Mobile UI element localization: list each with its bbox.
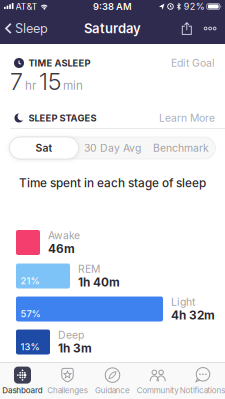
staticText: Community [137, 386, 178, 395]
button[interactable]: More [199, 13, 225, 44]
button[interactable]: Sat [9, 137, 78, 159]
staticText: 13% [20, 341, 39, 352]
button[interactable]: Challenges [45, 364, 90, 398]
staticText: Edit Goal [171, 57, 215, 69]
staticText: SLEEP STAGES [28, 112, 96, 124]
staticText: Light [171, 296, 195, 308]
staticText: Dashboard [2, 386, 43, 395]
button[interactable]: Share [175, 13, 199, 44]
staticText: 7 [10, 67, 23, 96]
staticText: 92% [184, 1, 205, 12]
staticText: TIME ASLEEP [28, 57, 90, 69]
staticText: 21% [20, 275, 39, 286]
staticText: Notifications [180, 386, 225, 395]
staticText: hr [25, 78, 36, 93]
button[interactable]: Community [135, 364, 180, 398]
staticText: 15 [39, 67, 61, 96]
staticText: 57% [20, 308, 40, 319]
button[interactable]: Edit Goal [171, 57, 215, 69]
staticText: Time spent in each stage of sleep [19, 176, 206, 190]
staticText: Sleep [15, 21, 48, 36]
staticText: REM [78, 263, 100, 275]
staticText: Learn More [159, 112, 215, 124]
staticText: 30 Day Avg [84, 142, 141, 154]
staticText: Guidance [95, 386, 130, 395]
staticText: AT&T [15, 1, 37, 12]
staticText: Awake [48, 229, 80, 242]
button[interactable]: 30 Day Avg [78, 137, 146, 159]
staticText: 1h 3m [58, 341, 92, 355]
staticText: Deep [58, 329, 84, 341]
staticText: 9:38 AM [93, 1, 132, 12]
staticText: 1h 40m [78, 275, 120, 289]
staticText: Sat [35, 142, 52, 154]
button[interactable]: Back [0, 13, 48, 44]
button[interactable]: Learn More [159, 112, 215, 124]
staticText: 46m [48, 242, 75, 256]
staticText: Challenges [47, 386, 88, 395]
staticText: Benchmark [153, 142, 209, 154]
staticText: Saturday [84, 21, 141, 36]
button[interactable]: Guidance [90, 364, 135, 398]
button[interactable]: Dashboard [0, 364, 45, 398]
staticText: min [63, 78, 83, 93]
staticText: 4h 32m [171, 308, 215, 322]
button[interactable]: Notifications [180, 364, 225, 398]
button[interactable]: Benchmark [146, 137, 215, 159]
